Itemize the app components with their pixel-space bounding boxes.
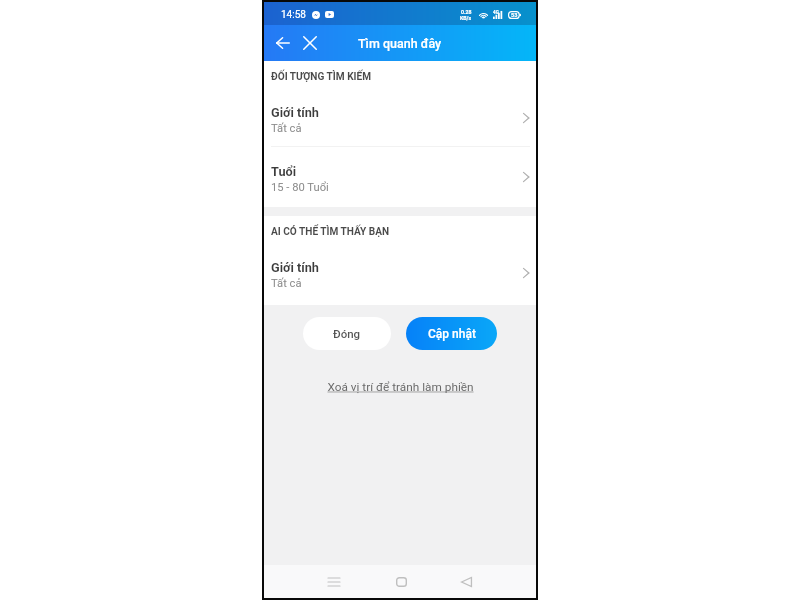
staticText: ĐỐI TƯỢNG TÌM KIẾM [271,71,372,83]
staticText: Giới tính [271,260,319,275]
staticText: Tất cả [271,277,302,290]
button[interactable]: Home [375,565,427,598]
button[interactable]: Tuổi [264,147,536,207]
button[interactable]: Back [440,565,492,598]
staticText: 14:58 [281,9,306,21]
staticText: Giới tính [271,105,319,120]
staticText: Tìm quanh đây [358,36,442,51]
staticText: Tất cả [271,122,302,135]
button[interactable]: Giới tính [264,89,536,146]
staticText: Xoá vị trí để tránh làm phiền [327,380,474,394]
staticText: 15 - 80 Tuổi [271,181,329,194]
staticText: Đóng [333,327,361,340]
button[interactable]: Đóng [303,317,391,350]
staticText: Cập nhật [428,327,476,341]
staticText: AI CÓ THỂ TÌM THẤY BẠN [271,226,390,238]
staticText: Tuổi [271,164,297,179]
button[interactable]: Xoá vị trí để tránh làm phiền [264,380,536,394]
button[interactable]: Back [269,25,296,61]
staticText: KB/s [460,15,472,21]
staticText: 4G [493,10,499,15]
button[interactable]: Giới tính [264,244,536,301]
button[interactable]: Cập nhật [406,317,497,350]
staticText: 0.28 [461,9,472,15]
button[interactable]: Recent apps [308,565,360,598]
button[interactable]: Close [296,25,323,61]
staticText: 53 [511,12,518,19]
